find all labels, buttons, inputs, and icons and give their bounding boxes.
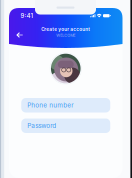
staticText: Password <box>27 122 56 130</box>
staticText: 9:41 <box>20 12 33 19</box>
button[interactable]: Phone number <box>21 98 110 112</box>
staticText: Phone number <box>27 101 73 109</box>
button[interactable]: Back <box>13 29 25 41</box>
staticText: Create your account <box>41 26 90 32</box>
button[interactable]: Password <box>21 118 110 133</box>
staticText: WELCOME <box>56 33 75 38</box>
